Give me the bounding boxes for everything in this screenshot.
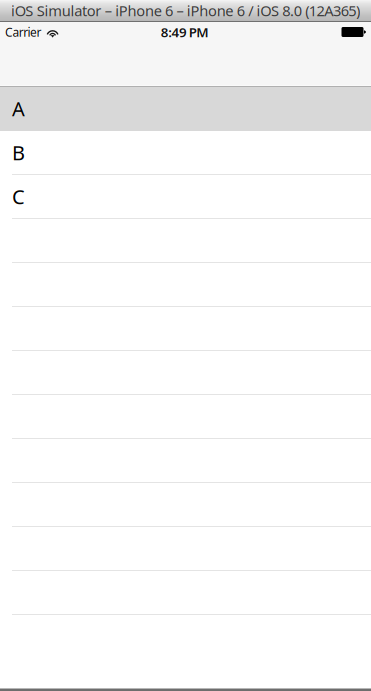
button[interactable]: Row 9: [0, 439, 371, 483]
button[interactable]: Row 5: [0, 263, 371, 307]
button[interactable]: Row 7: [0, 351, 371, 395]
button[interactable]: Row 12: [0, 571, 371, 615]
staticText: C: [12, 183, 25, 210]
button[interactable]: Row 4: [0, 219, 371, 263]
staticText: A: [12, 95, 25, 122]
staticText: B: [12, 139, 25, 166]
staticText: iOS Simulator – iPhone 6 – iPhone 6 / iO…: [11, 1, 360, 20]
button[interactable]: Row 10: [0, 483, 371, 527]
staticText: 8:49 PM: [161, 23, 208, 41]
button[interactable]: C: [0, 175, 371, 219]
button[interactable]: Row 8: [0, 395, 371, 439]
button[interactable]: B: [0, 131, 371, 175]
staticText: Carrier: [5, 24, 41, 40]
button[interactable]: A: [0, 87, 371, 131]
button[interactable]: Row 6: [0, 307, 371, 351]
button[interactable]: Row 11: [0, 527, 371, 571]
